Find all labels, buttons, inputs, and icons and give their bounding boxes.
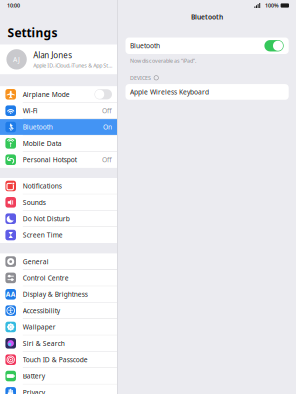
staticText: Apple Wireless Keyboard bbox=[130, 87, 209, 96]
staticText: Display & Brightness bbox=[23, 290, 88, 299]
button[interactable]: Battery bbox=[0, 368, 117, 384]
staticText: Touch ID & Passcode bbox=[23, 355, 88, 364]
staticText: Accessibility bbox=[23, 306, 60, 315]
staticText: Bluetooth bbox=[23, 123, 53, 131]
staticText: Apple ID, iCloud, iTunes & App St… bbox=[33, 62, 112, 69]
staticText: Control Centre bbox=[23, 273, 69, 282]
button[interactable]: Personal Hotspot bbox=[0, 152, 117, 168]
button[interactable]: Privacy bbox=[0, 384, 117, 394]
staticText: General bbox=[23, 257, 49, 266]
button[interactable]: Airplane Mode bbox=[0, 86, 117, 102]
button[interactable]: Do Not Disturb bbox=[0, 211, 117, 227]
staticText: Siri & Search bbox=[23, 339, 65, 348]
button[interactable]: Wi-Fi bbox=[0, 103, 117, 119]
button[interactable]: Apple Wireless Keyboard bbox=[118, 84, 296, 100]
staticText: Battery bbox=[23, 372, 45, 380]
button[interactable]: Notifications bbox=[0, 178, 117, 194]
staticText: Wi-Fi bbox=[23, 106, 38, 115]
button[interactable]: AA bbox=[0, 286, 117, 302]
staticText: DEVICES bbox=[130, 74, 151, 81]
button[interactable]: Mobile Data bbox=[0, 135, 117, 151]
staticText: Mobile Data bbox=[23, 139, 62, 148]
button[interactable]: General bbox=[0, 254, 117, 269]
staticText: AJ bbox=[13, 55, 20, 64]
staticText: On bbox=[103, 123, 112, 131]
button[interactable]: Siri & Search bbox=[0, 335, 117, 351]
button[interactable]: Wallpaper bbox=[0, 319, 117, 335]
staticText: Notifications bbox=[23, 181, 62, 190]
staticText: Bluetooth bbox=[130, 41, 160, 50]
button[interactable]: Bluetooth bbox=[118, 37, 296, 54]
staticText: Alan Jones bbox=[33, 50, 72, 60]
staticText: Airplane Mode bbox=[23, 90, 70, 99]
staticText: Personal Hotspot bbox=[23, 155, 77, 164]
staticText: AA bbox=[6, 290, 16, 299]
staticText: Screen Time bbox=[23, 231, 63, 239]
staticText: Settings bbox=[7, 24, 57, 40]
staticText: 100% bbox=[265, 2, 279, 9]
button[interactable]: Accessibility bbox=[0, 303, 117, 318]
staticText: Privacy bbox=[23, 388, 45, 394]
staticText: Bluetooth bbox=[191, 13, 223, 21]
staticText: Off bbox=[102, 155, 112, 164]
staticText: Do Not Disturb bbox=[23, 214, 70, 223]
staticText: 10:00 bbox=[7, 2, 20, 9]
button[interactable]: Screen Time bbox=[0, 227, 117, 243]
button[interactable]: Control Centre bbox=[0, 270, 117, 286]
staticText: Off bbox=[102, 106, 112, 115]
staticText: Wallpaper bbox=[23, 322, 56, 331]
staticText: Now discoverable as “iPad”. bbox=[130, 57, 196, 64]
button[interactable]: AJ bbox=[0, 44, 117, 74]
button[interactable]: Sounds bbox=[0, 194, 117, 210]
button[interactable]: Bluetooth bbox=[0, 119, 117, 135]
staticText: Sounds bbox=[23, 198, 46, 207]
button[interactable]: Touch ID & Passcode bbox=[0, 352, 117, 368]
